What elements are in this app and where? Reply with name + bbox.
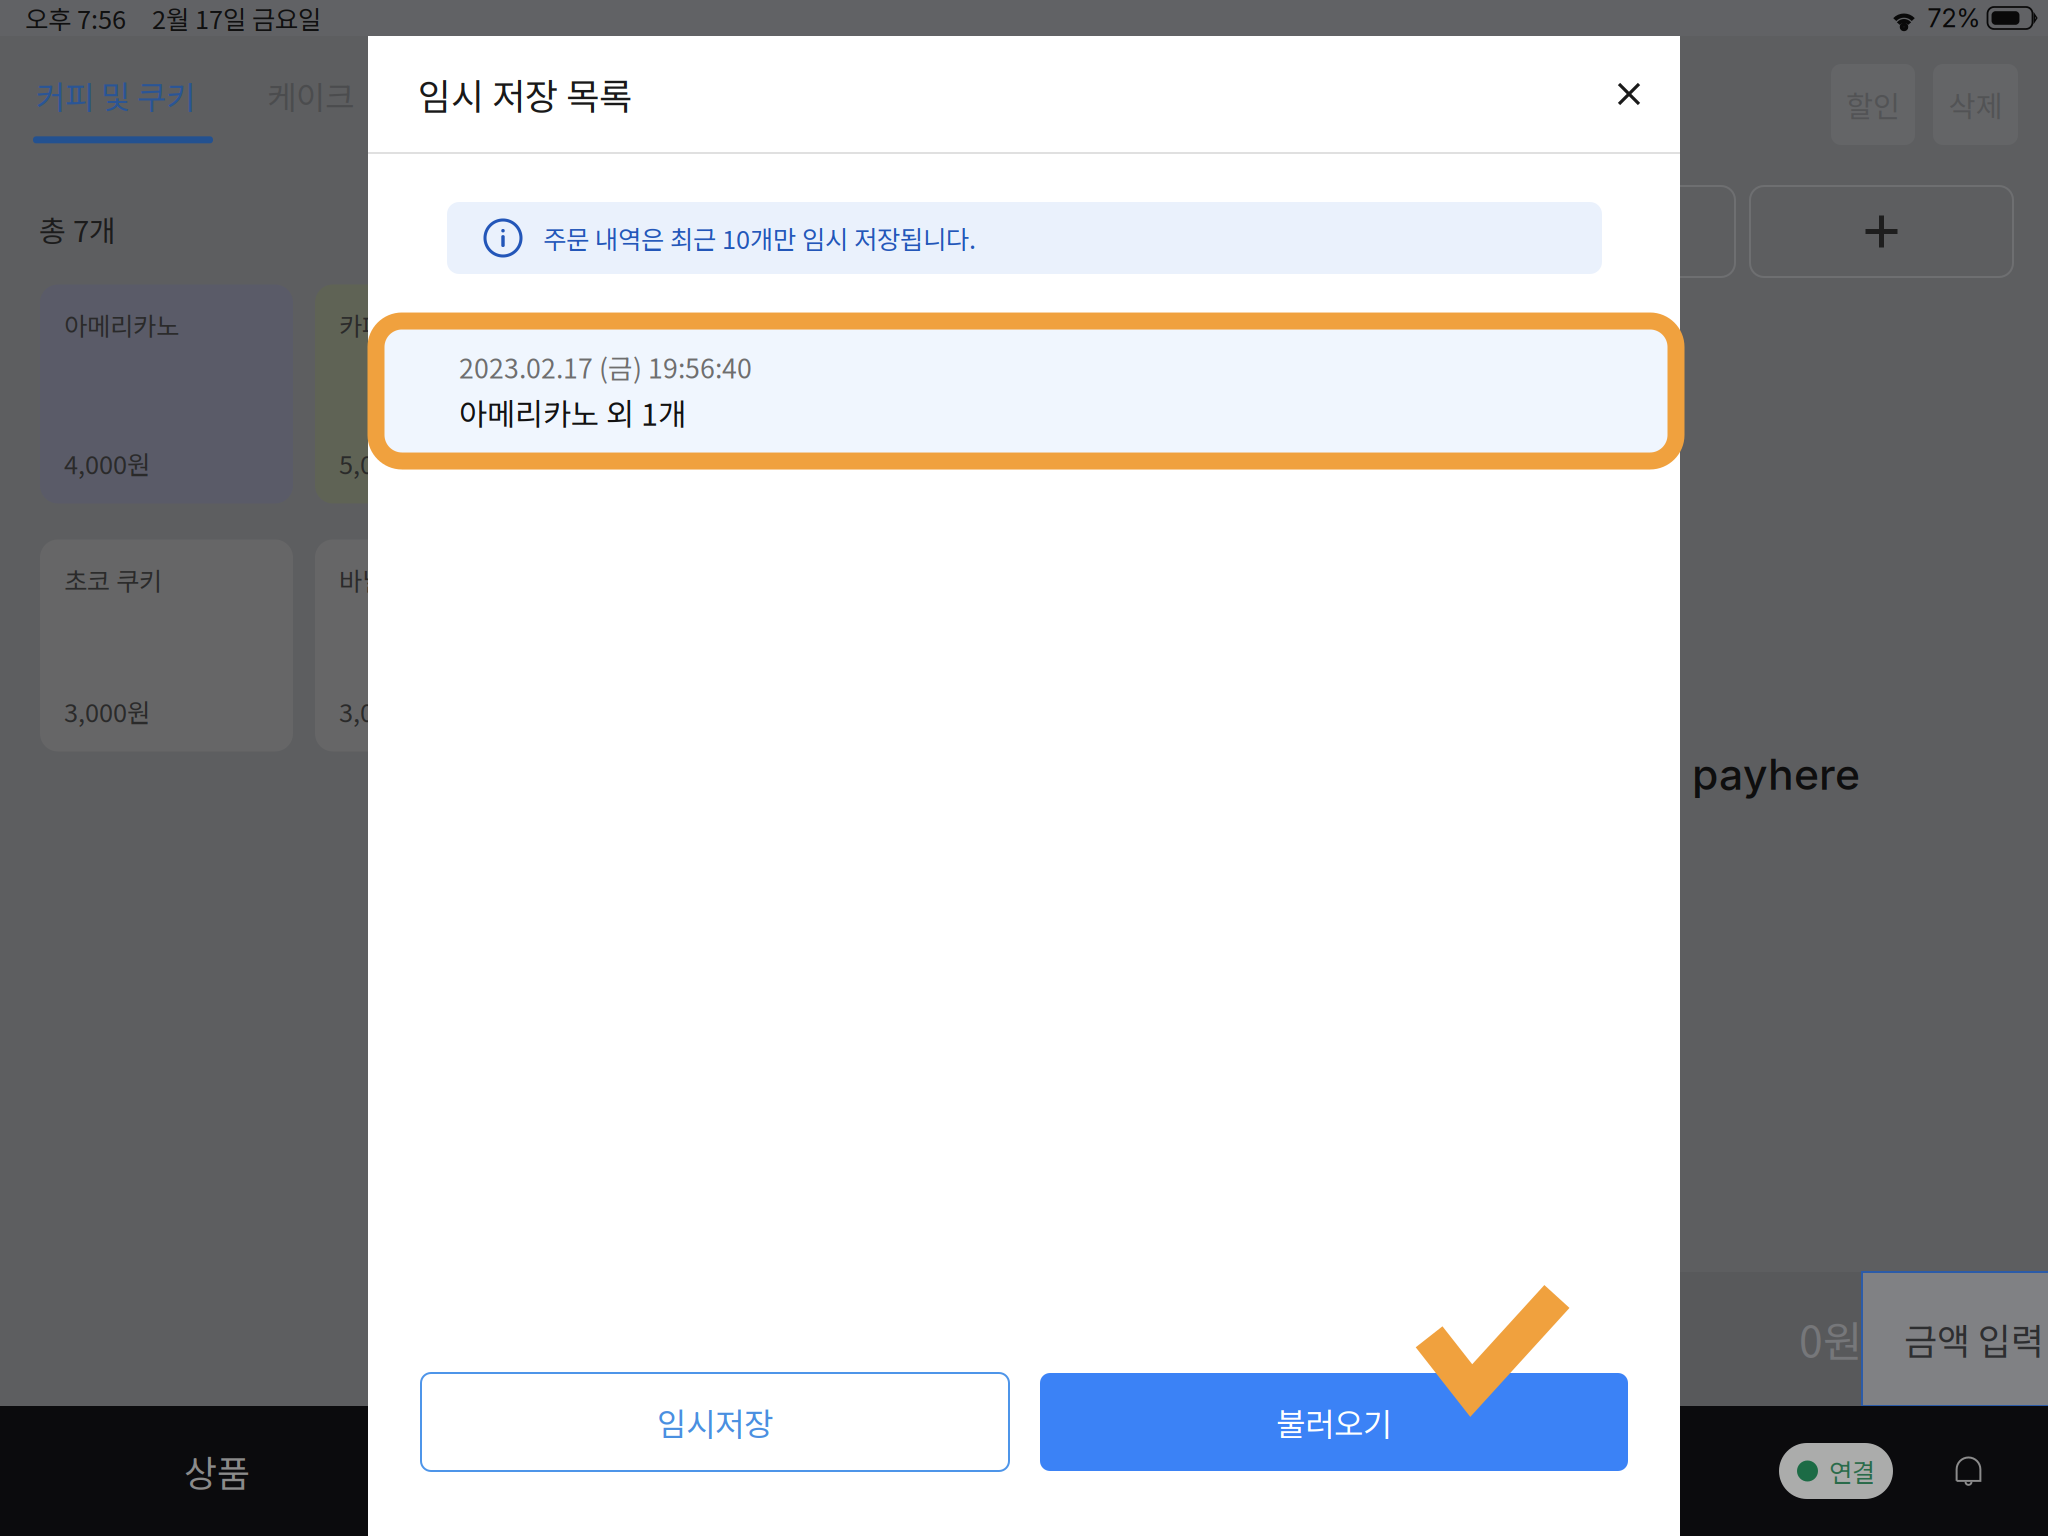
button[interactable]: 금액 입력 <box>1862 1272 2048 1406</box>
button[interactable]: 추가 <box>1750 186 2013 277</box>
staticText: 임시저장 <box>657 1399 773 1445</box>
button[interactable]: 불러오기 <box>1040 1373 1628 1471</box>
staticText: 2023.02.17 (금) 19:56:40 <box>459 347 752 386</box>
staticText: 아메리카노 <box>64 306 179 343</box>
staticText: 임시 저장 목록 <box>418 68 632 120</box>
staticText: 총 7개 <box>39 208 116 250</box>
button[interactable]: 닫기 <box>1605 70 1653 118</box>
button[interactable]: 연결 <box>1779 1443 1893 1499</box>
staticText: 0원 <box>1799 1308 1862 1370</box>
staticText: 4,000원 <box>64 445 150 481</box>
button[interactable]: 아메리카노 <box>40 284 293 503</box>
staticText: 카페라떼 <box>339 306 431 343</box>
staticText: 3,000원 <box>339 693 425 729</box>
staticText: 상품 <box>184 1445 250 1497</box>
staticText: 할인 <box>1846 83 1900 126</box>
button[interactable]: 카페라떼 <box>315 284 568 503</box>
staticText: 오후 7:56 <box>25 0 126 36</box>
staticText: 바닐라 쿠키 <box>339 561 460 598</box>
staticText: 초코 쿠키 <box>64 561 162 598</box>
button[interactable]: 초코 쿠키 <box>40 539 293 751</box>
button[interactable]: 수량 <box>1565 186 1735 277</box>
button[interactable]: 임시저장 <box>421 1373 1009 1471</box>
staticText: 2월 17일 금요일 <box>152 0 321 36</box>
staticText: 아메리카노 외 1개 <box>459 390 686 434</box>
staticText: 금액 입력 <box>1904 1313 2044 1365</box>
button[interactable]: 케이크 <box>231 36 354 118</box>
staticText: 커피 및 쿠키 <box>36 72 195 118</box>
button[interactable]: 바닐라 쿠키 <box>315 539 568 751</box>
staticText: 72% <box>1927 3 1980 33</box>
button[interactable]: 상품 <box>132 1406 302 1536</box>
button[interactable]: 할인 <box>1831 64 1915 145</box>
staticText: 불러오기 <box>1276 1399 1392 1445</box>
staticText: 5,000원 <box>339 445 425 481</box>
staticText: 주문 내역은 최근 10개만 임시 저장됩니다. <box>543 220 976 256</box>
staticText: 케이크 <box>267 72 354 118</box>
staticText: 연결 <box>1829 1453 1875 1489</box>
button[interactable]: 2023.02.17 (금) 19:56:40 <box>376 321 1676 461</box>
button[interactable]: 삭제 <box>1933 64 2018 145</box>
staticText: 삭제 <box>1948 83 2002 126</box>
staticText: 3,000원 <box>64 693 150 729</box>
button[interactable]: 커피 및 쿠키 <box>0 36 231 136</box>
staticText: payhere <box>1692 748 1860 800</box>
button[interactable]: 알림 <box>1893 1454 2013 1487</box>
